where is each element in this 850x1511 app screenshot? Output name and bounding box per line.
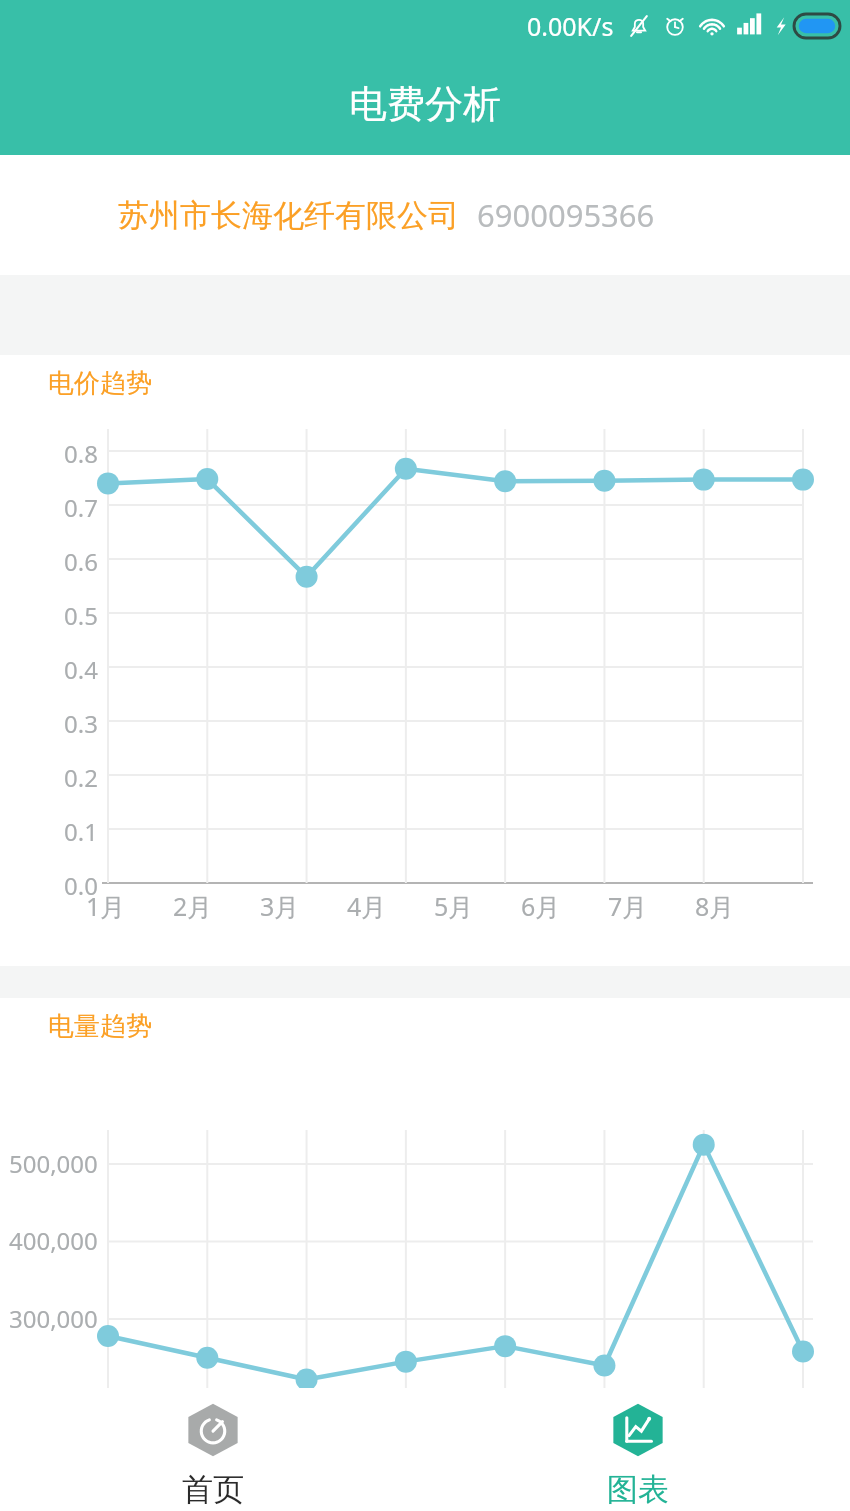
- staticText: 0.3: [64, 707, 98, 734]
- staticText: 0.7: [64, 491, 98, 518]
- staticText: 3月: [260, 889, 300, 923]
- staticText: 电价趋势: [48, 367, 152, 400]
- staticText: 400,000: [9, 1224, 98, 1257]
- staticText: 电费分析: [349, 80, 501, 128]
- staticText: 6900095366: [477, 194, 655, 236]
- staticText: 电量趋势: [48, 1010, 152, 1043]
- staticText: 1月: [86, 889, 126, 923]
- staticText: 苏州市长海化纤有限公司: [118, 196, 459, 235]
- staticText: 首页: [182, 1470, 244, 1509]
- staticText: 8月: [695, 889, 735, 923]
- staticText: 0.4: [64, 653, 98, 680]
- staticText: 0.1: [64, 815, 98, 842]
- staticText: 0.2: [64, 761, 98, 788]
- staticText: 7月: [608, 889, 648, 923]
- staticText: 0.6: [64, 545, 98, 572]
- staticText: 0.5: [64, 599, 98, 626]
- staticText: 2月: [173, 889, 213, 923]
- staticText: 0.0: [64, 869, 98, 896]
- staticText: 4月: [347, 889, 387, 923]
- staticText: 300,000: [9, 1302, 98, 1335]
- staticText: 6月: [521, 889, 561, 923]
- button[interactable]: 苏州市长海化纤有限公司: [0, 155, 850, 275]
- staticText: 0.8: [64, 437, 98, 464]
- staticText: 5月: [434, 889, 474, 923]
- button[interactable]: 图表: [425, 1388, 850, 1511]
- staticText: 0.00K/s: [527, 9, 614, 43]
- staticText: 图表: [607, 1470, 669, 1509]
- staticText: 500,000: [9, 1147, 98, 1180]
- button[interactable]: 首页: [0, 1388, 425, 1511]
